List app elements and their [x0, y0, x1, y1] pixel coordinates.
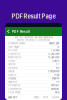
button[interactable]: Orientation: [5, 84, 62, 87]
staticText: Admin: [52, 60, 59, 62]
button[interactable]: Version: [5, 63, 62, 66]
staticText: English: [52, 77, 59, 80]
staticText: Print: [43, 96, 48, 99]
staticText: Language: [8, 77, 16, 80]
staticText: Page Size: [8, 81, 17, 83]
button[interactable]: Language: [5, 77, 62, 80]
button[interactable]: Total Pages: [5, 45, 62, 49]
staticText: High: [54, 74, 59, 76]
staticText: PDF Result: [12, 29, 30, 34]
button[interactable]: Save PDF: [8, 96, 17, 99]
staticText: 12 Jan 2024: [48, 53, 59, 55]
staticText: Medium: [51, 88, 59, 90]
staticText: RGB: [55, 91, 59, 94]
staticText: 1.24 MB: [51, 49, 59, 52]
button[interactable]: Modified On: [5, 56, 62, 59]
button[interactable]: Encrypted: [5, 66, 62, 70]
staticText: 12: [57, 46, 59, 48]
staticText: A4: [56, 81, 59, 83]
button[interactable]: Quality: [5, 73, 62, 77]
button[interactable]: Status: [5, 70, 62, 73]
button[interactable]: Print: [43, 96, 48, 99]
button[interactable]: Delete: [52, 96, 59, 99]
staticText: Modified On: [8, 56, 21, 59]
staticText: Share: [34, 96, 39, 99]
staticText: Version: [8, 63, 15, 66]
staticText: 1.7: [56, 63, 59, 66]
staticText: Orientation: [8, 84, 20, 87]
staticText: Delete: [52, 96, 59, 99]
staticText: PDF Result Page: [11, 13, 55, 20]
staticText: 14 Jan 2024: [48, 56, 59, 59]
staticText: Quality: [8, 74, 16, 76]
staticText: Completed: [48, 70, 59, 73]
staticText: Portrait: [51, 84, 59, 87]
staticText: Encrypted: [8, 67, 17, 69]
staticText: Status: [8, 70, 14, 73]
button[interactable]: File Size: [5, 49, 62, 52]
staticText: Compression: [8, 88, 21, 90]
staticText: Total Pages: [8, 46, 19, 48]
button[interactable]: Author: [5, 59, 62, 63]
staticText: File Size: [8, 49, 17, 52]
staticText: Created On: [8, 53, 20, 55]
button[interactable]: Document Name: [5, 42, 62, 45]
button[interactable]: Compression: [5, 87, 62, 91]
staticText: Result.pdf: [49, 42, 59, 45]
staticText: Review the details listed below: [17, 39, 50, 42]
button[interactable]: Share: [34, 96, 39, 99]
staticText: Document Name: [8, 42, 25, 45]
button[interactable]: Page Size: [5, 80, 62, 84]
staticText: Author: [8, 60, 15, 62]
staticText: Color Mode: [8, 91, 20, 94]
staticText: No: [56, 67, 59, 69]
button[interactable]: Color Mode: [5, 91, 62, 94]
staticText: Your PDF document has been generated: [14, 36, 52, 39]
button[interactable]: Back: [7, 30, 10, 33]
button[interactable]: Created On: [5, 52, 62, 56]
staticText: Save PDF: [8, 96, 17, 99]
